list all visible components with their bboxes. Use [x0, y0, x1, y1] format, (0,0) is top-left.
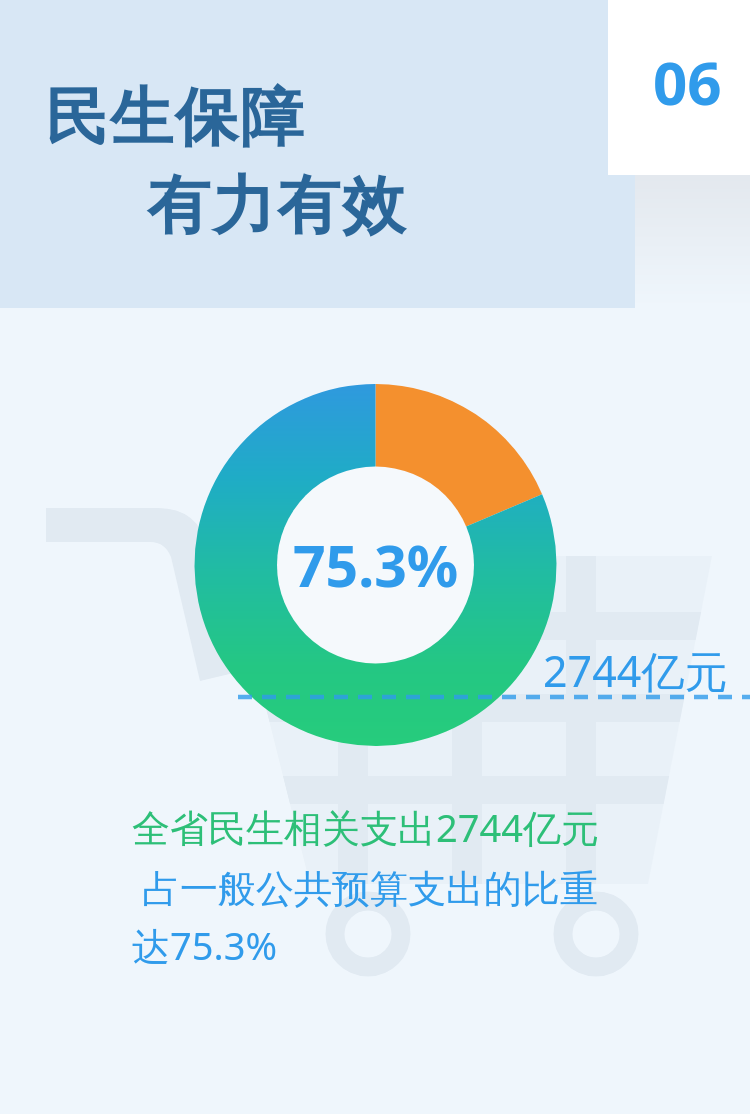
- button[interactable]: Section 06: [608, 0, 750, 175]
- staticText: 06: [653, 41, 722, 123]
- staticText: 有力有效: [146, 166, 406, 245]
- staticText: 75.3%: [293, 526, 459, 604]
- staticText: 占一般公共预算支出的比重: [142, 865, 598, 913]
- staticText: 达75.3%: [132, 919, 277, 971]
- staticText: 2744亿元: [543, 641, 728, 700]
- staticText: 全省民生相关支出2744亿元: [132, 801, 599, 853]
- staticText: 民生保障: [44, 78, 304, 157]
